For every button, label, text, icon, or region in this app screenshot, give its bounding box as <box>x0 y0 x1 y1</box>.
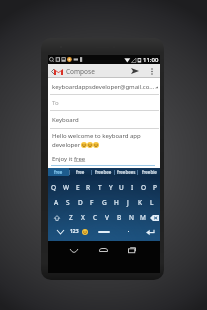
button[interactable]: Z <box>65 212 77 223</box>
button[interactable]: G <box>98 197 110 208</box>
staticText: K <box>138 198 143 207</box>
staticText: free <box>76 169 85 175</box>
button[interactable]: W <box>60 182 72 193</box>
button[interactable]: freebees <box>115 168 137 176</box>
button[interactable]: keyboardappsdeveloper@gmail.co... <box>48 78 160 95</box>
staticText: P <box>153 183 157 192</box>
button[interactable]: U <box>116 182 127 193</box>
button[interactable]: To <box>48 95 160 111</box>
button[interactable]: Back <box>67 243 81 257</box>
staticText: 123 <box>70 228 79 235</box>
staticText: O <box>141 183 147 192</box>
button[interactable]: Backspace <box>149 212 160 223</box>
staticText: N <box>129 213 134 222</box>
button[interactable]: T <box>94 182 105 193</box>
button[interactable]: C <box>89 212 101 223</box>
button[interactable]: K <box>134 197 146 208</box>
button[interactable]: 123 <box>66 226 82 237</box>
button[interactable]: Enter <box>140 226 160 237</box>
button[interactable]: A <box>50 197 62 208</box>
button[interactable]: free <box>70 168 91 176</box>
staticText: Z <box>69 213 73 222</box>
staticText: C <box>93 213 98 222</box>
staticText: D <box>78 198 83 207</box>
staticText: freebee <box>95 169 112 175</box>
staticText: freebees <box>117 169 136 175</box>
staticText: W <box>63 183 70 192</box>
button[interactable]: H <box>110 197 122 208</box>
button[interactable]: E <box>72 182 83 193</box>
button[interactable]: J <box>122 197 134 208</box>
button[interactable]: Space <box>91 226 117 237</box>
staticText: E <box>76 183 80 192</box>
staticText: U <box>119 183 124 192</box>
button[interactable]: S <box>62 197 74 208</box>
button[interactable]: Keyboard <box>48 111 160 129</box>
staticText: V <box>105 213 109 222</box>
staticText: H <box>114 198 119 207</box>
button[interactable]: B <box>113 212 125 223</box>
button[interactable]: Y <box>105 182 116 193</box>
button[interactable] <box>120 226 137 237</box>
button[interactable]: L <box>146 197 158 208</box>
button[interactable]: N <box>125 212 137 223</box>
staticText: Hello welcome to keyboard app <box>52 132 141 140</box>
staticText: free <box>74 155 86 163</box>
button[interactable]: P <box>149 182 160 193</box>
button[interactable]: R <box>83 182 94 193</box>
staticText: X <box>81 213 85 222</box>
staticText: Enjoy it <box>52 155 74 163</box>
staticText: Q <box>51 183 57 192</box>
staticText: I <box>131 183 134 192</box>
button[interactable]: Send <box>129 64 141 78</box>
staticText: R <box>86 183 91 192</box>
button[interactable]: Hello welcome to keyboard app <box>48 129 160 168</box>
button[interactable]: Recents <box>125 243 139 257</box>
button[interactable]: free <box>48 168 69 176</box>
button[interactable]: Back <box>48 64 56 78</box>
staticText: T <box>98 183 102 192</box>
staticText: To <box>52 99 59 107</box>
staticText: L <box>150 198 154 207</box>
button[interactable]: Shift <box>48 212 65 223</box>
staticText: Y <box>109 183 113 192</box>
staticText: developer <box>52 141 81 149</box>
staticText: A <box>54 198 59 207</box>
button[interactable]: Hide keyboard <box>50 226 70 237</box>
staticText: M <box>140 213 146 222</box>
staticText: F <box>90 198 94 207</box>
button[interactable]: Home <box>96 243 110 257</box>
button[interactable]: freebie <box>138 168 160 176</box>
staticText: J <box>127 198 129 207</box>
button[interactable]: I <box>127 182 138 193</box>
staticText: Keyboard <box>52 116 79 124</box>
button[interactable]: F <box>86 197 98 208</box>
staticText: 11:00 <box>143 56 159 64</box>
staticText: S <box>66 198 70 207</box>
button[interactable]: freebee <box>92 168 114 176</box>
staticText: B <box>117 213 122 222</box>
button[interactable]: V <box>101 212 113 223</box>
staticText: keyboardappsdeveloper@gmail.co... <box>52 83 155 91</box>
button[interactable]: D <box>74 197 86 208</box>
button[interactable]: O <box>138 182 149 193</box>
button[interactable]: More options <box>145 64 158 78</box>
staticText: G <box>102 198 107 207</box>
button[interactable]: Emoji <box>79 226 91 237</box>
staticText: Compose <box>66 67 95 76</box>
button[interactable]: M <box>137 212 149 223</box>
button[interactable]: X <box>77 212 89 223</box>
button[interactable]: Q <box>48 182 60 193</box>
staticText: freebie <box>142 169 157 175</box>
staticText: free <box>54 169 63 175</box>
